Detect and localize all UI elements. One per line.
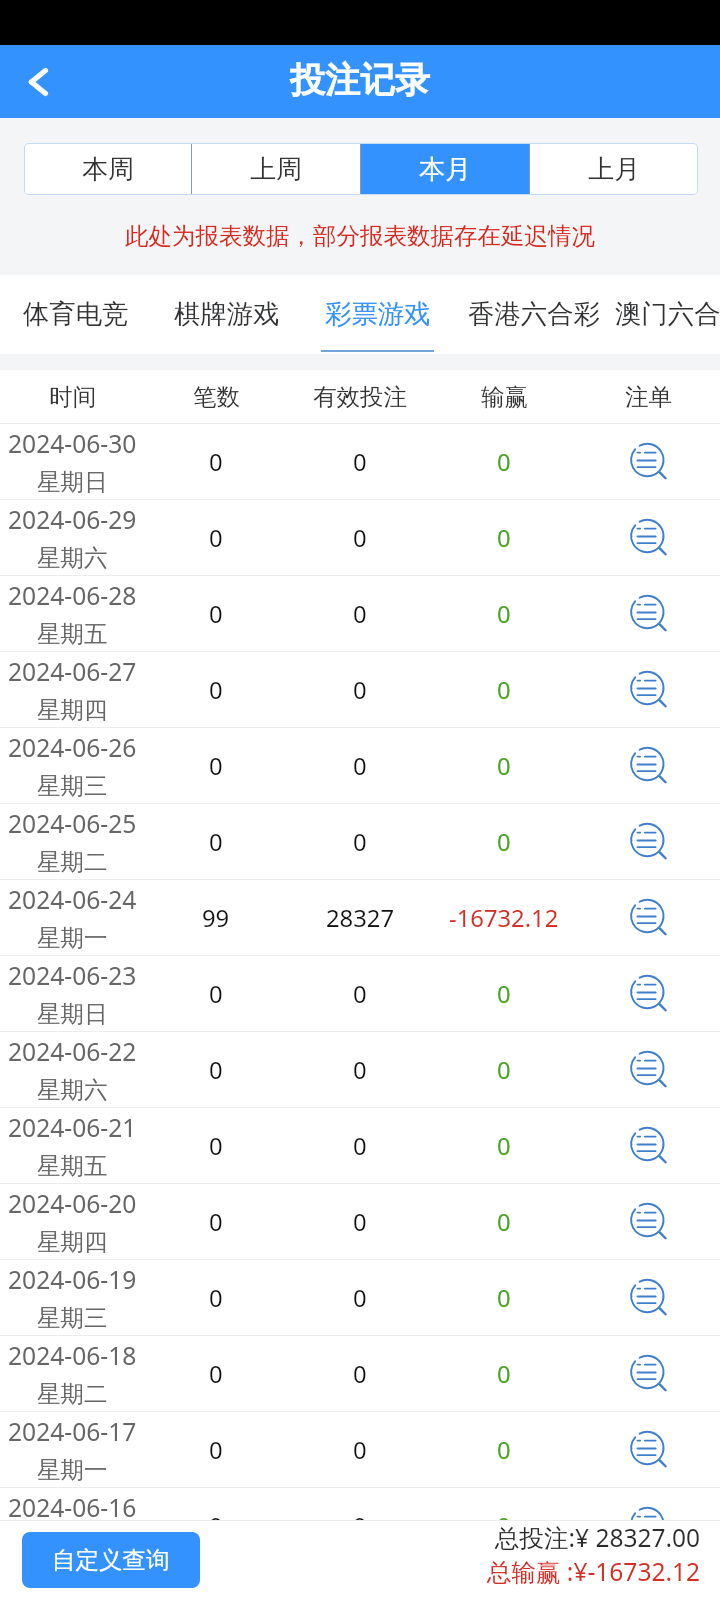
staticText: 0	[209, 1434, 223, 1466]
staticText: 2024-06-23	[8, 959, 137, 993]
button[interactable]: 2024-06-20	[0, 1184, 720, 1259]
staticText: 28327	[326, 902, 395, 934]
button[interactable]: View order detail	[576, 728, 720, 803]
button[interactable]: 2024-06-21	[0, 1108, 720, 1183]
staticText: 0	[497, 826, 511, 858]
staticText: 0	[209, 978, 223, 1010]
staticText: 0	[353, 1358, 367, 1390]
button[interactable]: View order detail	[576, 1488, 720, 1563]
staticText: 0	[209, 750, 223, 782]
staticText: 输赢	[481, 382, 528, 412]
staticText: 星期一	[37, 923, 108, 953]
staticText: 0	[209, 1510, 223, 1542]
staticText: 星期二	[37, 1379, 108, 1409]
button[interactable]: Back	[12, 56, 64, 108]
button[interactable]: 本周	[24, 143, 191, 195]
staticText: 0	[497, 978, 511, 1010]
staticText: 彩票游戏	[325, 298, 431, 331]
staticText: 0	[353, 750, 367, 782]
button[interactable]: 2024-06-17	[0, 1412, 720, 1487]
staticText: 星期六	[37, 1075, 108, 1105]
staticText: 0	[209, 522, 223, 554]
button[interactable]: 2024-06-25	[0, 804, 720, 879]
button[interactable]: View order detail	[576, 1184, 720, 1259]
staticText: 0	[497, 1054, 511, 1086]
staticText: 0	[353, 1130, 367, 1162]
staticText: 0	[497, 446, 511, 478]
staticText: 有效投注	[313, 382, 407, 412]
staticText: 0	[497, 522, 511, 554]
staticText: 本周	[82, 153, 134, 186]
staticText: 注单	[625, 382, 672, 412]
staticText: 星期日	[37, 999, 108, 1029]
staticText: 0	[209, 598, 223, 630]
staticText: 0	[497, 1358, 511, 1390]
staticText: 0	[497, 1510, 511, 1542]
staticText: 星期六	[37, 543, 108, 573]
button[interactable]: 2024-06-19	[0, 1260, 720, 1335]
button[interactable]: 2024-06-27	[0, 652, 720, 727]
staticText: 0	[353, 1054, 367, 1086]
staticText: 0	[353, 1510, 367, 1542]
staticText: 0	[209, 1130, 223, 1162]
button[interactable]: View order detail	[576, 880, 720, 955]
button[interactable]: View order detail	[576, 652, 720, 727]
button[interactable]: 上月	[530, 143, 698, 195]
button[interactable]: 2024-06-22	[0, 1032, 720, 1107]
staticText: 2024-06-27	[8, 655, 137, 689]
button[interactable]: View order detail	[576, 500, 720, 575]
staticText: 星期三	[37, 771, 108, 801]
staticText: 星期三	[37, 1303, 108, 1333]
button[interactable]: View order detail	[576, 1336, 720, 1411]
staticText: 0	[353, 522, 367, 554]
button[interactable]: View order detail	[576, 804, 720, 879]
button[interactable]: 香港六合彩	[453, 275, 615, 352]
staticText: 0	[353, 598, 367, 630]
staticText: 0	[497, 1282, 511, 1314]
staticText: 自定义查询	[52, 1545, 170, 1575]
button[interactable]: View order detail	[576, 1412, 720, 1487]
staticText: 0	[209, 1206, 223, 1238]
button[interactable]: 棋牌游戏	[151, 275, 302, 352]
staticText: 0	[353, 674, 367, 706]
button[interactable]: 2024-06-28	[0, 576, 720, 651]
staticText: 0	[353, 1434, 367, 1466]
button[interactable]: View order detail	[576, 956, 720, 1031]
staticText: 星期四	[37, 1227, 108, 1257]
staticText: 0	[497, 750, 511, 782]
staticText: 本月	[419, 153, 471, 186]
button[interactable]: 2024-06-23	[0, 956, 720, 1031]
staticText: 0	[497, 674, 511, 706]
staticText: 此处为报表数据，部分报表数据存在延迟情况	[125, 221, 595, 251]
button[interactable]: View order detail	[576, 1260, 720, 1335]
button[interactable]: 体育电竞	[0, 275, 151, 352]
button[interactable]: 2024-06-30	[0, 424, 720, 499]
button[interactable]: 2024-06-26	[0, 728, 720, 803]
staticText: 上周	[250, 153, 302, 186]
button[interactable]: 2024-06-29	[0, 500, 720, 575]
button[interactable]: 2024-06-18	[0, 1336, 720, 1411]
button[interactable]: 澳门六合彩	[615, 275, 720, 352]
staticText: 0	[353, 826, 367, 858]
staticText: 0	[353, 1206, 367, 1238]
staticText: 0	[209, 1358, 223, 1390]
staticText: -16732.12	[449, 902, 559, 934]
staticText: 0	[353, 978, 367, 1010]
button[interactable]: View order detail	[576, 576, 720, 651]
button[interactable]: 彩票游戏	[302, 275, 453, 352]
staticText: 0	[353, 446, 367, 478]
staticText: 99	[202, 902, 230, 934]
staticText: 2024-06-28	[8, 579, 137, 613]
button[interactable]: 上周	[192, 143, 360, 195]
button[interactable]: View order detail	[576, 424, 720, 499]
button[interactable]: View order detail	[576, 1032, 720, 1107]
button[interactable]: 2024-06-24	[0, 880, 720, 955]
staticText: 2024-06-26	[8, 731, 137, 765]
staticText: 星期一	[37, 1455, 108, 1485]
button[interactable]: View order detail	[576, 1108, 720, 1183]
button[interactable]: 本月	[361, 143, 529, 195]
button[interactable]: 自定义查询	[22, 1532, 200, 1588]
button[interactable]: 2024-06-16	[0, 1488, 720, 1563]
staticText: 星期五	[37, 619, 108, 649]
staticText: 总投注:¥ 28327.00	[495, 1521, 701, 1554]
